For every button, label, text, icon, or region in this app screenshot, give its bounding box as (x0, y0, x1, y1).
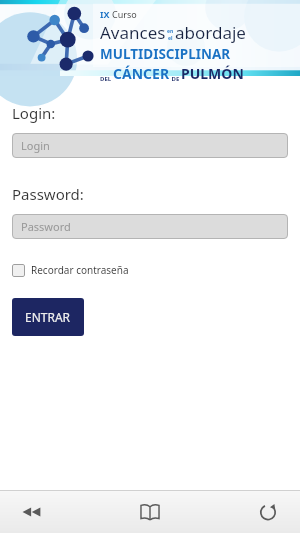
button[interactable]: Password (12, 214, 288, 239)
staticText: Login: (12, 103, 56, 123)
staticText: Curso (112, 8, 137, 20)
staticText: Login (21, 138, 50, 153)
staticText: MULTIDISCIPLINAR (100, 45, 231, 63)
button[interactable]: ENTRAR (12, 298, 84, 336)
button[interactable]: Refresh (200, 490, 300, 533)
staticText: IX (100, 8, 112, 20)
staticText: Password (21, 219, 71, 234)
staticText: ENTRAR (25, 309, 71, 325)
staticText: CÁNCER (113, 64, 170, 83)
staticText: abordaje (175, 21, 246, 44)
staticText: Avances (100, 21, 166, 44)
button[interactable]: Bookmarks (100, 490, 200, 533)
button[interactable]: Back (0, 490, 100, 533)
staticText: Recordar contraseña (31, 263, 129, 277)
staticText: el (168, 35, 173, 42)
staticText: DE (170, 75, 181, 83)
staticText: PULMÓN (181, 64, 244, 83)
button[interactable]: Recordar contraseña (12, 261, 129, 279)
staticText: en (167, 28, 174, 35)
staticText: Password: (12, 184, 84, 204)
button[interactable]: Login (12, 133, 288, 158)
staticText: DEL (100, 75, 113, 83)
